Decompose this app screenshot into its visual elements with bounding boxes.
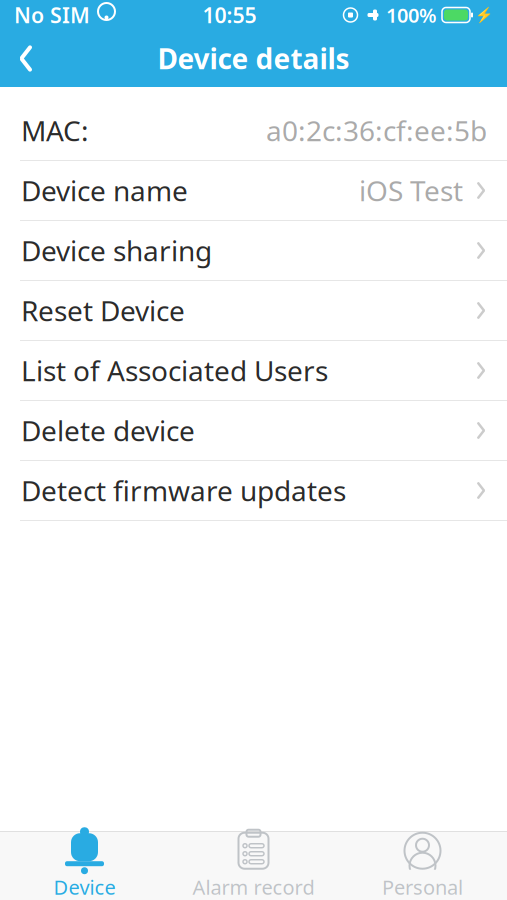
- button[interactable]: Detect firmware updates: [0, 461, 507, 520]
- staticText: Delete device: [21, 412, 195, 449]
- staticText: Device: [53, 874, 115, 900]
- staticText: 100%: [386, 2, 437, 28]
- staticText: Device sharing: [21, 232, 212, 269]
- staticText: List of Associated Users: [21, 352, 328, 389]
- staticText: Reset Device: [21, 292, 185, 329]
- staticText: Personal: [382, 874, 463, 900]
- button[interactable]: Device: [0, 832, 169, 900]
- button[interactable]: Personal: [338, 832, 507, 900]
- staticText: iOS Test: [359, 172, 463, 209]
- staticText: No SIM: [14, 1, 90, 29]
- button[interactable]: Device sharing: [0, 221, 507, 280]
- button[interactable]: Alarm record: [169, 832, 338, 900]
- staticText: a0:2c:36:cf:ee:5b: [266, 112, 487, 149]
- button[interactable]: Reset Device: [0, 281, 507, 340]
- staticText: 10:55: [202, 1, 256, 29]
- staticText: Device name: [21, 172, 188, 209]
- staticText: ⚡: [475, 7, 493, 23]
- button[interactable]: Delete device: [0, 401, 507, 460]
- button[interactable]: Device name: [0, 161, 507, 220]
- staticText: Detect firmware updates: [21, 472, 346, 509]
- button[interactable]: List of Associated Users: [0, 341, 507, 400]
- staticText: MAC:: [21, 112, 89, 149]
- staticText: Device details: [157, 40, 349, 77]
- button[interactable]: Back: [0, 30, 52, 87]
- staticText: Alarm record: [192, 874, 314, 900]
- button[interactable]: MAC:: [0, 101, 507, 160]
